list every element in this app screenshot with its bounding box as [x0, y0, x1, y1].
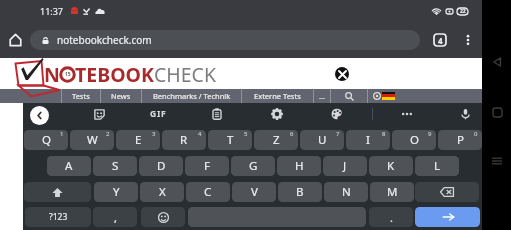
staticText: Z: [273, 132, 280, 148]
staticText: 8: [382, 130, 386, 138]
button[interactable]: Z: [254, 130, 298, 150]
button[interactable]: B: [278, 182, 322, 202]
staticText: 2: [106, 130, 110, 138]
button[interactable]: Enter: [415, 207, 480, 227]
staticText: A: [65, 158, 73, 174]
staticText: N: [44, 61, 60, 88]
staticText: L: [434, 158, 441, 174]
button[interactable]: Emoji: [141, 207, 185, 227]
staticText: CHECK: [154, 61, 217, 88]
button[interactable]: More options: [454, 26, 482, 54]
button[interactable]: J: [323, 156, 367, 176]
staticText: GIF: [150, 108, 167, 120]
staticText: ?123: [49, 211, 68, 223]
button[interactable]: Tests: [62, 89, 100, 103]
button[interactable]: Tabs: [426, 26, 454, 54]
button[interactable]: O: [392, 130, 436, 150]
staticText: Q: [42, 132, 51, 148]
button[interactable]: W: [70, 130, 114, 150]
button[interactable]: [392, 103, 422, 125]
staticText: ...: [319, 91, 326, 101]
button[interactable]: F: [185, 156, 229, 176]
staticText: Externe Tests: [254, 91, 301, 101]
button[interactable]: X: [140, 182, 184, 202]
button[interactable]: I: [346, 130, 390, 150]
staticText: M: [387, 184, 398, 200]
button[interactable]: Recents: [486, 150, 508, 172]
button[interactable]: Home: [0, 25, 30, 55]
button[interactable]: [450, 103, 480, 125]
button[interactable]: D: [139, 156, 183, 176]
button[interactable]: [262, 103, 292, 125]
button[interactable]: Externe Tests: [242, 89, 313, 103]
button[interactable]: Back: [30, 106, 49, 125]
staticText: P: [457, 132, 464, 148]
staticText: notebookcheck.com: [57, 33, 152, 47]
button[interactable]: Home: [486, 101, 508, 123]
button[interactable]: [322, 103, 352, 125]
button[interactable]: [202, 103, 232, 125]
button[interactable]: Back: [486, 51, 508, 73]
staticText: 7: [336, 130, 340, 138]
staticText: ,: [114, 210, 117, 225]
staticText: Tests: [72, 91, 90, 101]
staticText: Benchmarks / Technik: [153, 91, 231, 101]
staticText: TEBOOK: [75, 61, 154, 88]
staticText: U: [318, 132, 327, 148]
button[interactable]: N: [324, 182, 368, 202]
staticText: 0: [474, 130, 478, 138]
button[interactable]: Y: [94, 182, 138, 202]
button[interactable]: [84, 103, 114, 125]
button[interactable]: V: [232, 182, 276, 202]
staticText: 6: [290, 130, 294, 138]
button[interactable]: Benchmarks / Technik: [142, 89, 241, 103]
staticText: E: [135, 132, 142, 148]
button[interactable]: U: [300, 130, 344, 150]
staticText: 5: [244, 130, 248, 138]
button[interactable]: GIF: [143, 103, 173, 125]
button[interactable]: T: [208, 130, 252, 150]
staticText: 4: [198, 130, 202, 138]
button[interactable]: C: [186, 182, 230, 202]
staticText: K: [387, 158, 395, 174]
button[interactable]: R: [162, 130, 206, 150]
button[interactable]: Shift: [24, 182, 91, 202]
staticText: J: [343, 158, 347, 174]
staticText: S: [112, 158, 119, 174]
button[interactable]: .: [369, 207, 413, 227]
staticText: B: [296, 184, 304, 200]
button[interactable]: E: [116, 130, 160, 150]
button[interactable]: Search: [331, 89, 367, 103]
staticText: 11:37: [40, 5, 64, 17]
button[interactable]: S: [93, 156, 137, 176]
staticText: W: [87, 132, 98, 148]
staticText: 1: [60, 130, 64, 138]
button[interactable]: Close: [335, 67, 349, 81]
button[interactable]: News: [101, 89, 141, 103]
staticText: O: [410, 132, 419, 148]
staticText: I: [366, 132, 370, 148]
button[interactable]: Q: [24, 130, 68, 150]
button[interactable]: L: [415, 156, 459, 176]
button[interactable]: A: [47, 156, 91, 176]
button[interactable]: Backspace: [415, 182, 479, 202]
button[interactable]: ...: [314, 89, 330, 103]
button[interactable]: ,: [93, 207, 137, 227]
button[interactable]: notebookcheck.com: [30, 30, 420, 50]
button[interactable]: K: [369, 156, 413, 176]
button[interactable]: P: [438, 130, 482, 150]
staticText: News: [111, 91, 131, 101]
staticText: G: [249, 158, 258, 174]
staticText: Y: [113, 184, 120, 200]
button[interactable]: M: [370, 182, 414, 202]
button[interactable]: ?123: [25, 207, 91, 227]
staticText: 4: [438, 35, 443, 46]
staticText: N: [342, 184, 351, 200]
staticText: V: [251, 184, 258, 200]
button[interactable]: G: [231, 156, 275, 176]
staticText: C: [204, 184, 212, 200]
staticText: 15: [65, 71, 71, 78]
button[interactable]: H: [277, 156, 321, 176]
staticText: H: [295, 158, 304, 174]
